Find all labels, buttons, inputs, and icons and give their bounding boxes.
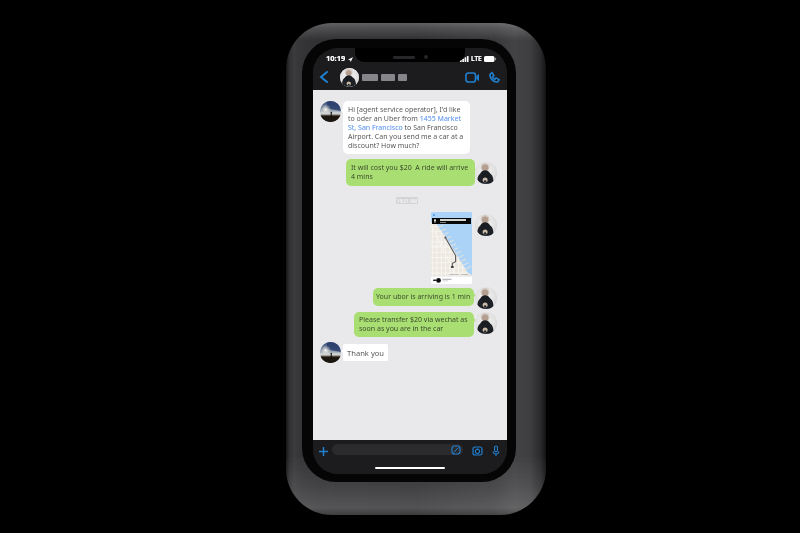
staticText: Hi [agent service operator], I'd like to…	[348, 105, 465, 150]
staticText: 10:21 AM	[397, 198, 418, 204]
button[interactable]: Thank you	[343, 344, 388, 361]
button[interactable]: Phone call	[483, 64, 505, 90]
button[interactable]	[332, 444, 463, 455]
staticText: It will cost you $20 A ride will arrive …	[351, 163, 470, 181]
staticText: Please transfer $20 via wechat as soon a…	[359, 315, 469, 333]
button[interactable]: Video call	[461, 64, 483, 90]
button[interactable]: Please transfer $20 via wechat as soon a…	[354, 312, 474, 337]
button[interactable]: Hi [agent service operator], I'd like to…	[343, 101, 470, 154]
button[interactable]: Add attachment	[316, 444, 330, 458]
staticText: 10:19	[326, 53, 346, 63]
button[interactable]: Voice message	[489, 444, 502, 457]
button[interactable]: Map route preview	[431, 212, 472, 284]
button[interactable]: It will cost you $20 A ride will arrive …	[346, 159, 475, 186]
button[interactable]: Back	[313, 64, 335, 90]
staticText: LTE	[471, 54, 482, 63]
button[interactable]: Camera	[471, 444, 484, 457]
button[interactable]	[340, 68, 461, 87]
button[interactable]: Your ubor is arriving is 1 min	[373, 288, 474, 306]
staticText: Thank you	[347, 348, 385, 358]
staticText: Your ubor is arriving is 1 min	[376, 292, 471, 302]
